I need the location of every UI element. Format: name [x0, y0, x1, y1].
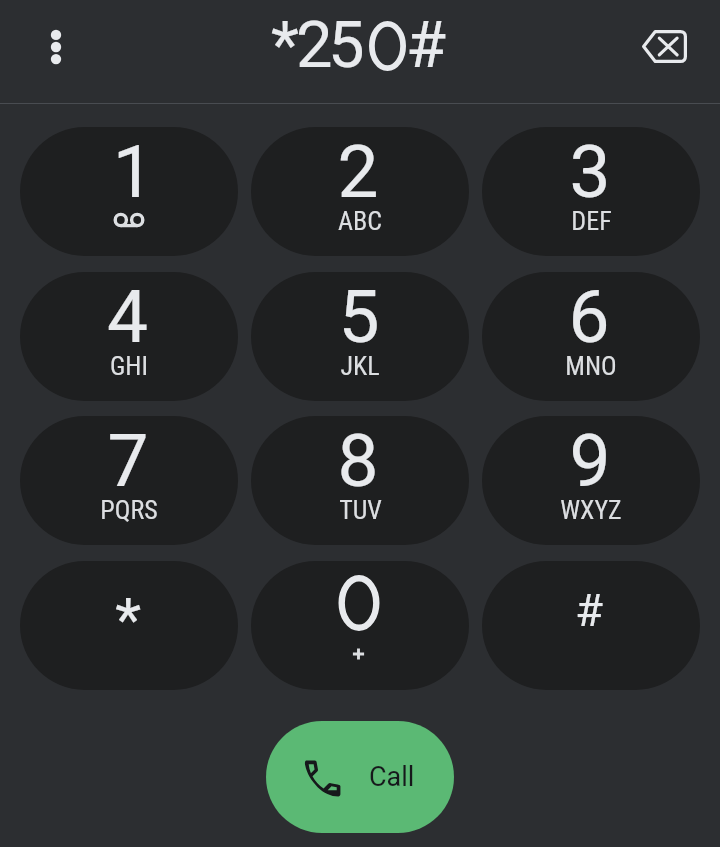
staticText: 2 — [296, 7, 333, 69]
button[interactable]: 3 — [482, 127, 700, 256]
staticText: 2 — [337, 129, 379, 215]
staticText: 6 — [568, 274, 610, 360]
staticText: PQRS — [100, 495, 158, 525]
button[interactable]: *250# — [260, 14, 460, 76]
button[interactable]: 9 — [482, 416, 700, 545]
staticText: Call — [369, 761, 415, 793]
button[interactable]: 2 — [251, 127, 469, 256]
staticText: ABC — [338, 206, 382, 236]
button[interactable]: More options — [28, 19, 84, 75]
button[interactable]: 8 — [251, 416, 469, 545]
staticText: DEF — [571, 206, 612, 236]
button[interactable] — [251, 561, 469, 690]
staticText: * — [271, 7, 299, 69]
button[interactable]: * — [20, 561, 238, 690]
staticText: TUV — [339, 495, 382, 525]
staticText: 1 — [112, 129, 154, 215]
staticText: GHI — [110, 351, 148, 381]
button[interactable]: 4 — [20, 272, 238, 401]
staticText: # — [406, 7, 447, 69]
button[interactable]: Call — [266, 721, 454, 833]
button[interactable]: # — [482, 561, 700, 690]
button[interactable]: 7 — [20, 416, 238, 545]
staticText: * — [115, 584, 141, 654]
staticText: # — [575, 584, 603, 637]
staticText: 7 — [107, 418, 149, 504]
staticText: 9 — [569, 418, 611, 504]
staticText: 5 — [328, 7, 365, 69]
button[interactable]: 6 — [482, 272, 700, 401]
staticText: 8 — [337, 418, 379, 504]
button[interactable]: Backspace — [642, 30, 687, 63]
staticText: 3 — [569, 129, 611, 215]
button[interactable]: 1 — [20, 127, 238, 256]
staticText: 5 — [338, 274, 380, 360]
staticText: MNO — [565, 351, 617, 381]
staticText: WXYZ — [560, 495, 622, 525]
staticText: 4 — [106, 274, 148, 360]
staticText: JKL — [340, 351, 380, 381]
button[interactable]: 5 — [251, 272, 469, 401]
